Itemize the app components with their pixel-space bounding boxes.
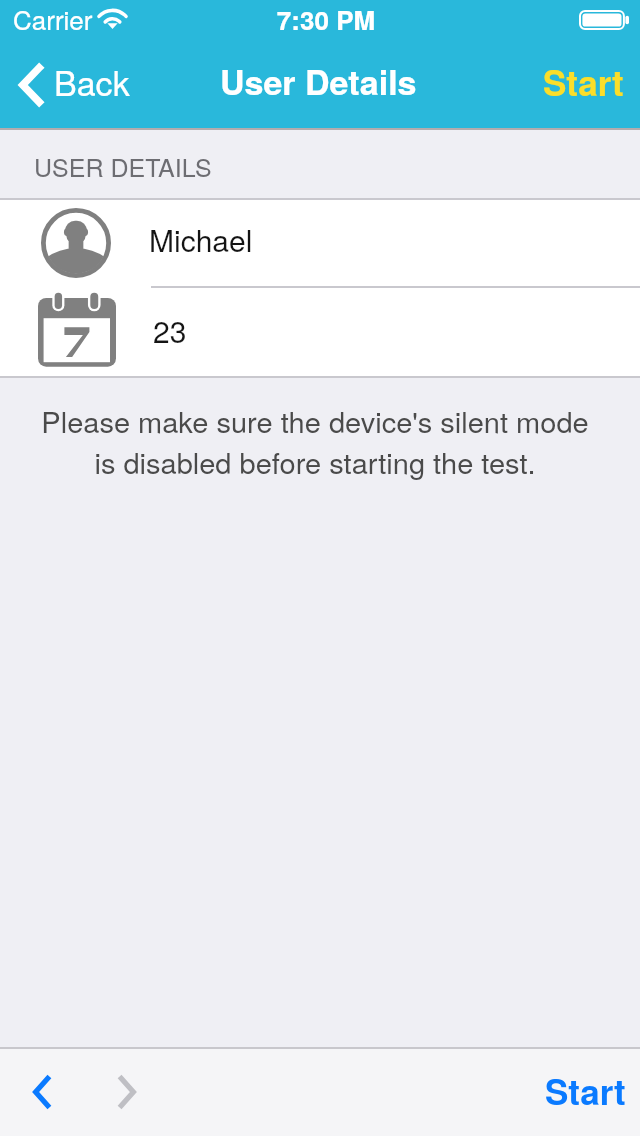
staticText: Start (545, 1066, 626, 1116)
staticText: User Details (220, 57, 417, 106)
staticText: Please make sure the device's silent mod… (0, 400, 635, 482)
button[interactable]: Previous (0, 1047, 84, 1136)
button[interactable]: Start (521, 59, 640, 109)
button[interactable]: Start (519, 1047, 640, 1136)
staticText: Back (54, 57, 130, 106)
staticText: Carrier (13, 0, 93, 37)
staticText: Start (543, 57, 624, 107)
button[interactable]: Next (84, 1047, 168, 1136)
button[interactable]: Back (0, 60, 149, 109)
button[interactable]: 23 (0, 287, 640, 376)
staticText: Michael (149, 218, 253, 261)
staticText: 7:30 PM (6, 1, 640, 38)
staticText: USER DETAILS (34, 148, 212, 184)
staticText: 23 (153, 309, 187, 352)
button[interactable]: Michael (0, 198, 640, 287)
